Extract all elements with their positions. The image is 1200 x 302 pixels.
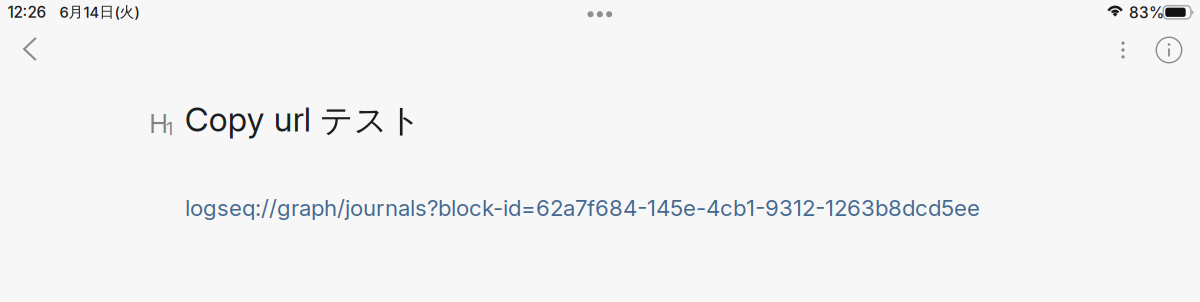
button[interactable]: Info bbox=[1147, 28, 1191, 72]
staticText: H bbox=[149, 108, 168, 139]
button[interactable]: logseq://graph/journals?block-id=62a7f68… bbox=[185, 194, 980, 221]
staticText: 83% bbox=[1129, 3, 1164, 22]
button[interactable]: Back bbox=[8, 27, 52, 71]
staticText: Copy url テスト bbox=[185, 99, 422, 141]
staticText: 1 bbox=[166, 118, 173, 139]
button[interactable]: Heading level 1 bbox=[149, 108, 173, 139]
staticText: 12:26 bbox=[7, 3, 46, 22]
staticText: 6月14日(火) bbox=[59, 3, 139, 21]
staticText: logseq://graph/journals?block-id=62a7f68… bbox=[185, 194, 980, 221]
button[interactable]: More options bbox=[1101, 28, 1145, 72]
